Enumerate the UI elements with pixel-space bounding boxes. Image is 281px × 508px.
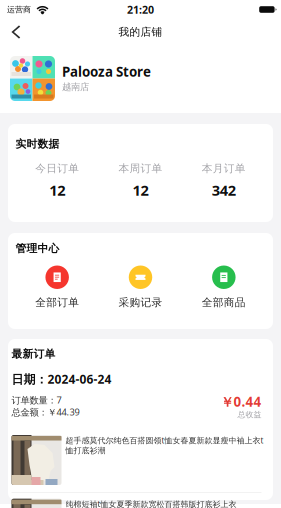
staticText: 订单数量：7 xyxy=(11,394,61,406)
staticText: 今日订单 xyxy=(35,162,79,175)
staticText: 越南店 xyxy=(62,81,89,93)
staticText: 最新订单 xyxy=(11,347,55,360)
staticText: ￥0.44 xyxy=(220,393,261,410)
staticText: 总收益 xyxy=(237,410,261,419)
staticText: 纯棉短袖t恤女夏季新款宽松百搭韩版打底衫上衣 xyxy=(65,499,236,508)
button[interactable]: 全部订单 xyxy=(15,265,99,308)
staticText: 12 xyxy=(132,180,148,200)
staticText: 全部订单 xyxy=(35,296,79,309)
staticText: 21:20 xyxy=(127,2,154,17)
staticText: 管理中心 xyxy=(15,242,59,255)
staticText: 342 xyxy=(212,180,236,200)
button[interactable]: 全部商品 xyxy=(182,265,265,308)
staticText: 本周订单 xyxy=(118,162,162,175)
staticText: 实时数据 xyxy=(15,137,59,150)
staticText: Palooza Store xyxy=(62,63,151,80)
staticText: 采购记录 xyxy=(118,296,162,309)
staticText: 全部商品 xyxy=(202,296,246,309)
staticText: 超手感莫代尔纯色百搭圆领t恤女春夏新款显瘦中袖上衣t恤打底衫潮 xyxy=(65,435,263,455)
staticText: 总金额：￥44.39 xyxy=(11,406,79,418)
staticText: 我的店铺 xyxy=(118,25,162,38)
staticText: 日期：2024-06-24 xyxy=(11,371,111,387)
staticText: 12 xyxy=(49,180,65,200)
button[interactable]: 采购记录 xyxy=(99,265,182,308)
button[interactable]: 返回 xyxy=(0,19,32,45)
staticText: 运营商 xyxy=(7,5,31,14)
staticText: 本月订单 xyxy=(202,162,246,175)
